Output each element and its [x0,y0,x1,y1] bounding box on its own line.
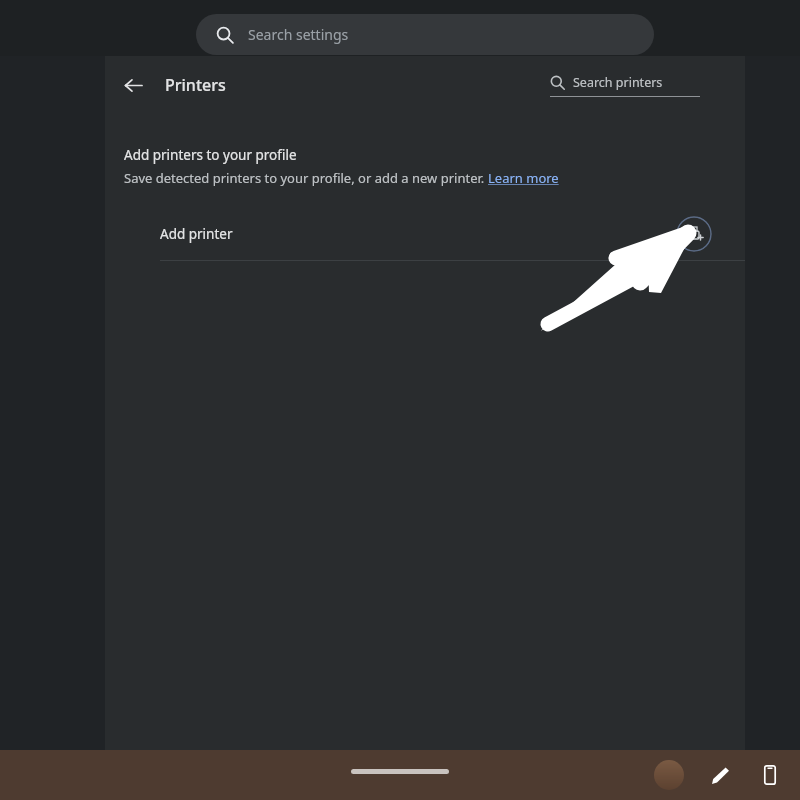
button[interactable]: Search printers [550,74,700,97]
button[interactable]: Add printer [105,206,745,261]
button[interactable]: Learn more [488,169,559,187]
button[interactable]: Add printer [676,216,712,252]
staticText: Add printer [160,225,233,243]
staticText: Search printers [573,74,663,91]
button[interactable]: Stylus [704,759,736,791]
button[interactable]: Back [115,67,151,103]
button[interactable]: Search settings [196,14,654,55]
staticText: Add printers to your profile [124,146,297,164]
staticText: Save detected printers to your profile, … [124,169,488,187]
button[interactable]: Home [351,769,449,774]
staticText: Search settings [248,25,349,44]
button[interactable]: Phone [754,759,786,791]
button[interactable]: Profile [654,760,684,790]
staticText: Printers [165,74,226,96]
